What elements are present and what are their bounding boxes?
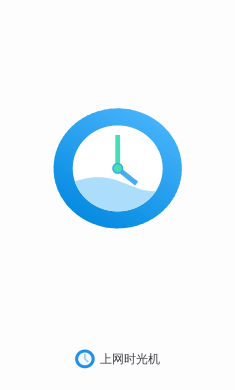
button[interactable]: 上网时光机 — [75, 349, 160, 369]
staticText: 上网时光机 — [100, 352, 160, 366]
